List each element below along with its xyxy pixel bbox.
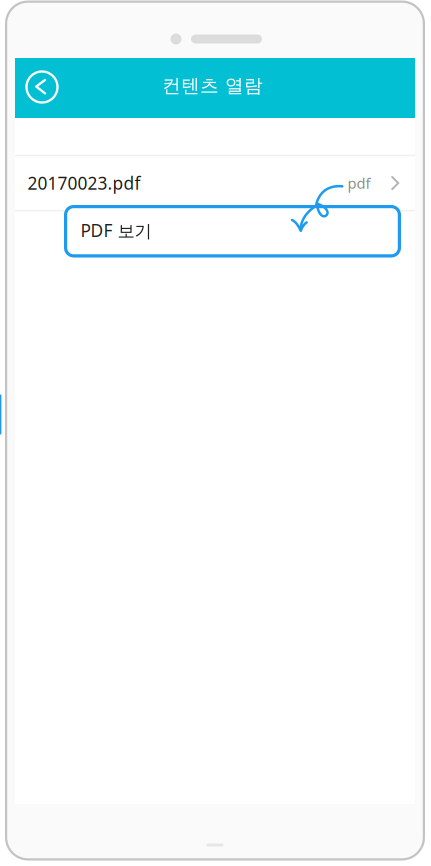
staticText: PDF 보기 (80, 219, 151, 242)
button[interactable]: 20170023.pdf (15, 155, 415, 211)
staticText: 20170023.pdf (27, 171, 140, 194)
button[interactable]: Back (20, 65, 64, 109)
button[interactable]: PDF 보기 (64, 205, 401, 257)
staticText: pdf (347, 173, 370, 193)
staticText: 컨텐츠 열람 (162, 74, 263, 97)
